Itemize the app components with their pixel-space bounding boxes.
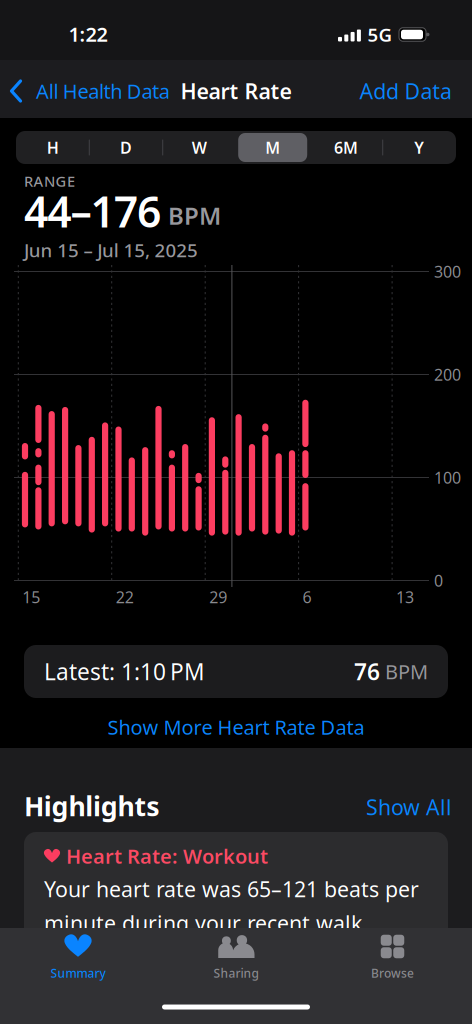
staticText: 76: [354, 656, 380, 686]
staticText: Y: [414, 137, 424, 158]
staticText: 1:22: [68, 21, 107, 47]
staticText: BPM: [168, 200, 221, 231]
staticText: 0: [434, 570, 443, 591]
staticText: minute during your recent walk.: [44, 909, 368, 937]
staticText: BPM: [385, 658, 428, 685]
staticText: M: [265, 137, 280, 158]
button[interactable]: Y: [384, 131, 454, 164]
button[interactable]: D: [91, 131, 161, 164]
button[interactable]: Browse: [352, 929, 432, 983]
staticText: All Health Data: [36, 78, 170, 104]
button[interactable]: W: [164, 131, 234, 164]
button[interactable]: All Health Data: [6, 70, 186, 112]
staticText: H: [47, 137, 59, 158]
staticText: Jun 15 – Jul 15, 2025: [24, 238, 198, 262]
staticText: 100: [434, 467, 461, 488]
staticText: 6: [303, 586, 312, 608]
staticText: Heart Rate: Workout: [66, 843, 268, 869]
staticText: Summary: [50, 965, 105, 981]
staticText: 44–176: [24, 183, 161, 239]
staticText: Your heart rate was 65–121 beats per: [44, 875, 419, 903]
staticText: RANGE: [24, 171, 75, 191]
staticText: Browse: [371, 965, 414, 981]
button[interactable]: Add Data: [332, 77, 452, 105]
staticText: 5G: [367, 22, 392, 47]
staticText: Show More Heart Rate Data: [107, 714, 364, 740]
staticText: W: [192, 137, 207, 158]
staticText: Latest: 1:10 PM: [44, 656, 205, 686]
staticText: 6M: [334, 137, 358, 158]
button[interactable]: Heart Rate: Workout: [24, 832, 448, 952]
button[interactable]: M: [238, 131, 308, 164]
button[interactable]: Show More Heart Rate Data: [107, 714, 364, 740]
staticText: Add Data: [359, 77, 452, 105]
staticText: 300: [434, 261, 461, 282]
button[interactable]: Show All: [366, 793, 452, 821]
staticText: 13: [396, 586, 414, 608]
staticText: 200: [434, 364, 461, 385]
button[interactable]: Sharing: [196, 929, 276, 983]
staticText: D: [120, 137, 132, 158]
staticText: 15: [22, 586, 40, 608]
staticText: 29: [209, 586, 227, 608]
staticText: Heart Rate: [180, 77, 291, 105]
button[interactable]: H: [18, 131, 88, 164]
button[interactable]: Summary: [38, 929, 118, 983]
staticText: Show All: [366, 793, 452, 821]
staticText: Highlights: [24, 788, 159, 824]
staticText: Sharing: [213, 965, 258, 981]
button[interactable]: 6M: [311, 131, 381, 164]
staticText: 22: [116, 586, 134, 608]
